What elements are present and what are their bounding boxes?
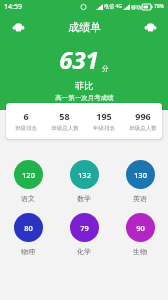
staticText: 996 — [135, 110, 151, 122]
staticText: 化学 — [77, 247, 91, 256]
staticText: 数学 — [77, 194, 91, 203]
staticText: 年级排名 — [93, 125, 115, 132]
button[interactable]: 90 — [112, 213, 168, 256]
staticText: 分 — [102, 64, 109, 73]
button[interactable]: 132 — [56, 160, 112, 203]
staticText: 移动 — [131, 4, 141, 10]
button[interactable]: Download — [6, 15, 30, 39]
staticText: 语文 — [21, 194, 35, 203]
staticText: 成绩单 — [68, 20, 101, 34]
staticText: 班级总人数 — [129, 125, 157, 132]
staticText: 班级排名 — [15, 125, 37, 132]
staticText: 14:59 — [4, 2, 22, 12]
staticText: 130 — [134, 170, 147, 180]
button[interactable]: 6 — [6, 110, 162, 132]
staticText: 菲比 — [75, 80, 93, 91]
button[interactable]: 80 — [0, 213, 56, 256]
staticText: 631 — [59, 43, 99, 76]
staticText: 6 — [23, 110, 29, 122]
staticText: 78% — [154, 3, 164, 10]
button[interactable]: Upload — [138, 15, 162, 39]
button[interactable]: 120 — [0, 160, 56, 203]
staticText: 电信 4G — [104, 3, 122, 10]
staticText: 195 — [96, 110, 112, 122]
staticText: 79 — [80, 223, 89, 233]
staticText: 班级总人数 — [51, 125, 79, 132]
staticText: 生物 — [133, 247, 147, 256]
staticText: 高一第一次月考成绩 — [55, 94, 114, 102]
staticText: 120 — [22, 170, 35, 180]
staticText: 80 — [24, 223, 33, 233]
staticText: 90 — [136, 223, 145, 233]
staticText: 58 — [59, 110, 70, 122]
staticText: 英语 — [133, 194, 147, 203]
staticText: 物理 — [21, 247, 35, 256]
button[interactable]: 130 — [112, 160, 168, 203]
staticText: 132 — [78, 170, 91, 180]
button[interactable]: 79 — [56, 213, 112, 256]
